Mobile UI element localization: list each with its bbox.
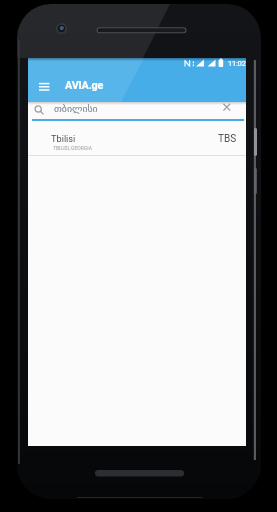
button[interactable]	[28, 102, 246, 122]
staticText: თბილისი	[54, 103, 98, 114]
staticText: TBILISI, GEORGIA	[53, 145, 92, 151]
staticText: AVIA.ge	[65, 79, 104, 92]
button[interactable]	[32, 76, 60, 100]
staticText: TBS	[218, 133, 237, 145]
staticText: 11:02	[228, 59, 246, 67]
button[interactable]	[28, 124, 246, 155]
staticText: Tbilisi	[51, 133, 76, 144]
